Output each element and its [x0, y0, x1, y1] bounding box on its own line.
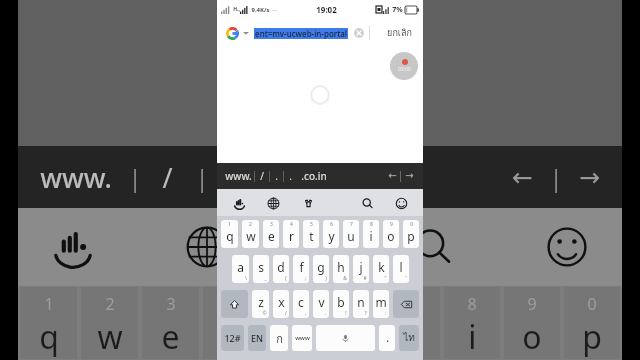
button[interactable]: 12# — [221, 325, 244, 351]
button[interactable]: . — [284, 169, 297, 183]
button[interactable]: / — [255, 169, 269, 183]
button[interactable]: 1 — [221, 220, 238, 248]
staticText: p — [582, 315, 602, 359]
staticText: 4 — [290, 221, 293, 228]
staticText: ← — [512, 163, 533, 192]
staticText: ยกเลิก — [387, 26, 412, 40]
button[interactable]: 7 — [343, 220, 359, 248]
button[interactable]: n — [353, 290, 369, 318]
staticText: c — [298, 294, 304, 310]
button[interactable]: m — [373, 290, 389, 318]
staticText: 7 — [350, 221, 353, 228]
button[interactable]: l — [393, 255, 409, 283]
staticText: → — [579, 163, 600, 192]
button[interactable]: f — [293, 255, 309, 283]
button[interactable]: Previous — [384, 168, 400, 184]
button[interactable]: 9 — [383, 220, 399, 248]
button[interactable]: x — [273, 290, 289, 318]
button[interactable]: 8 — [363, 220, 379, 248]
button[interactable]: 3 — [263, 220, 279, 248]
staticText: 9 — [390, 221, 393, 228]
staticText: q — [39, 315, 59, 359]
button[interactable]: ยกเลิก — [384, 26, 415, 40]
staticText: 19:02 — [316, 4, 337, 15]
button[interactable]: ก — [270, 325, 288, 351]
staticText: 1 — [228, 221, 231, 228]
staticText: & — [343, 275, 347, 282]
staticText: . — [325, 310, 327, 317]
button[interactable]: j — [353, 255, 369, 283]
staticText: ) — [325, 275, 327, 282]
staticText: / — [260, 169, 264, 183]
button[interactable]: Shift — [221, 290, 248, 318]
staticText: → — [405, 170, 414, 182]
staticText: 0 — [587, 293, 597, 315]
button[interactable]: www. — [223, 169, 254, 183]
button[interactable]: 4 — [283, 220, 299, 248]
staticText: m — [375, 294, 387, 310]
button[interactable]: 5 — [303, 220, 319, 248]
staticText: ! — [345, 310, 347, 317]
staticText: . — [229, 159, 237, 196]
staticText: w — [246, 228, 256, 244]
button[interactable]: c — [293, 290, 309, 318]
staticText: 1 — [44, 293, 54, 315]
staticText: u — [402, 315, 422, 359]
button[interactable]: Search engine — [223, 24, 241, 42]
button[interactable]: Space — [316, 325, 375, 351]
staticText: ← — [388, 170, 397, 182]
button[interactable]: Next — [401, 168, 417, 184]
button[interactable]: 2 — [242, 220, 259, 248]
button[interactable]: Theme — [298, 193, 318, 213]
staticText: _ — [264, 275, 267, 282]
staticText: r — [289, 228, 294, 244]
button[interactable]: Backspace — [393, 290, 419, 318]
button[interactable]: z — [252, 290, 269, 318]
button[interactable]: 0 — [403, 220, 419, 248]
button[interactable]: s — [253, 255, 269, 283]
button[interactable]: v — [313, 290, 329, 318]
button[interactable]: 6 — [323, 220, 339, 248]
button[interactable]: k — [373, 255, 389, 283]
button[interactable]: ไท — [399, 325, 419, 351]
staticText: t — [286, 315, 298, 359]
staticText: 2 — [249, 221, 252, 228]
staticText: b — [337, 294, 345, 310]
staticText: 6 — [330, 221, 333, 228]
staticText: \ — [245, 275, 247, 282]
button[interactable]: Language — [263, 193, 283, 213]
staticText: www. — [225, 169, 252, 183]
staticText: 5 — [310, 221, 313, 228]
staticText: .co.in — [301, 169, 327, 183]
staticText: 7% — [392, 5, 403, 15]
button[interactable]: www — [292, 325, 312, 351]
button[interactable]: .co.in — [299, 169, 329, 183]
button[interactable]: Clear — [352, 26, 366, 40]
button[interactable]: . — [379, 325, 395, 351]
staticText: d — [277, 259, 285, 275]
button[interactable]: Gestures — [229, 193, 249, 213]
staticText: n — [357, 294, 365, 310]
staticText: 0 — [410, 221, 413, 228]
staticText: / — [285, 310, 287, 317]
button[interactable]: EN — [248, 325, 266, 351]
button[interactable]: Search — [357, 193, 377, 213]
staticText: . — [275, 169, 278, 183]
staticText: ไท — [403, 330, 415, 346]
button[interactable]: b — [333, 290, 349, 318]
button[interactable]: g — [313, 255, 329, 283]
button[interactable]: Screen recorder — [390, 52, 418, 80]
staticText: p — [407, 228, 415, 244]
staticText: l — [399, 259, 403, 275]
staticText: / — [162, 159, 173, 196]
button[interactable]: h — [333, 255, 349, 283]
button[interactable]: . — [270, 169, 283, 183]
staticText: : — [385, 310, 387, 317]
staticText: 7 — [407, 293, 417, 315]
staticText: www — [295, 334, 310, 342]
staticText: ent=mv-ucweb-in-portal — [255, 28, 347, 39]
staticText: . — [289, 169, 292, 183]
button[interactable]: Emoji — [391, 193, 411, 213]
button[interactable]: a — [232, 255, 249, 283]
button[interactable]: d — [273, 255, 289, 283]
